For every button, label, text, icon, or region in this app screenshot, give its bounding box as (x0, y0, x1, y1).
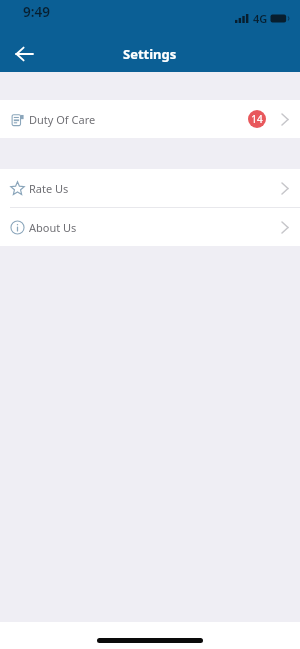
staticText: About Us (29, 220, 77, 235)
staticText: 4G (253, 11, 268, 26)
staticText: 9:49 (23, 3, 50, 21)
staticText: 14 (251, 112, 263, 126)
staticText: Rate Us (29, 181, 69, 196)
button[interactable]: Back (6, 36, 42, 72)
staticText: Duty Of Care (29, 112, 96, 127)
button[interactable]: About Us (0, 208, 300, 246)
button[interactable]: Duty Of Care (0, 100, 300, 138)
button[interactable]: Rate Us (0, 169, 300, 207)
staticText: Settings (123, 45, 177, 63)
